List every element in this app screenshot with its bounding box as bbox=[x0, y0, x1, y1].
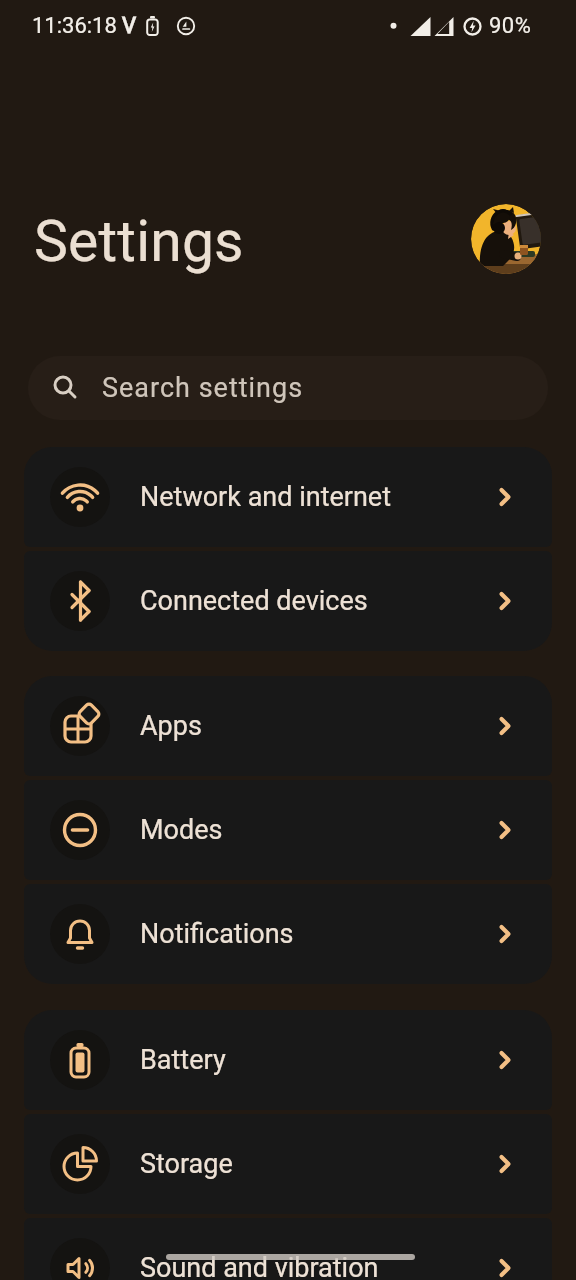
button[interactable]: Connected devices bbox=[24, 551, 552, 651]
button[interactable]: Apps bbox=[24, 676, 552, 776]
button[interactable] bbox=[471, 204, 541, 274]
button[interactable]: Notifications bbox=[24, 884, 552, 984]
staticText: Modes bbox=[140, 814, 223, 846]
staticText: Battery bbox=[140, 1044, 226, 1076]
staticText: Settings bbox=[34, 208, 244, 275]
staticText: Apps bbox=[140, 710, 202, 742]
button[interactable]: Network and internet bbox=[24, 447, 552, 547]
staticText: Network and internet bbox=[140, 481, 391, 513]
staticText: Connected devices bbox=[140, 585, 368, 617]
staticText: V bbox=[122, 13, 137, 39]
button[interactable]: Search settings bbox=[28, 356, 548, 420]
button[interactable]: Battery bbox=[24, 1010, 552, 1110]
button[interactable]: Modes bbox=[24, 780, 552, 880]
staticText: Sound and vibration bbox=[140, 1252, 379, 1280]
staticText: 90% bbox=[489, 13, 532, 39]
staticText: 11:36:18 bbox=[32, 13, 117, 39]
staticText: Notifications bbox=[140, 918, 294, 950]
button[interactable]: Storage bbox=[24, 1114, 552, 1214]
button[interactable]: Sound and vibration bbox=[24, 1218, 552, 1280]
staticText: Storage bbox=[140, 1148, 233, 1180]
staticText: Search settings bbox=[102, 372, 304, 404]
